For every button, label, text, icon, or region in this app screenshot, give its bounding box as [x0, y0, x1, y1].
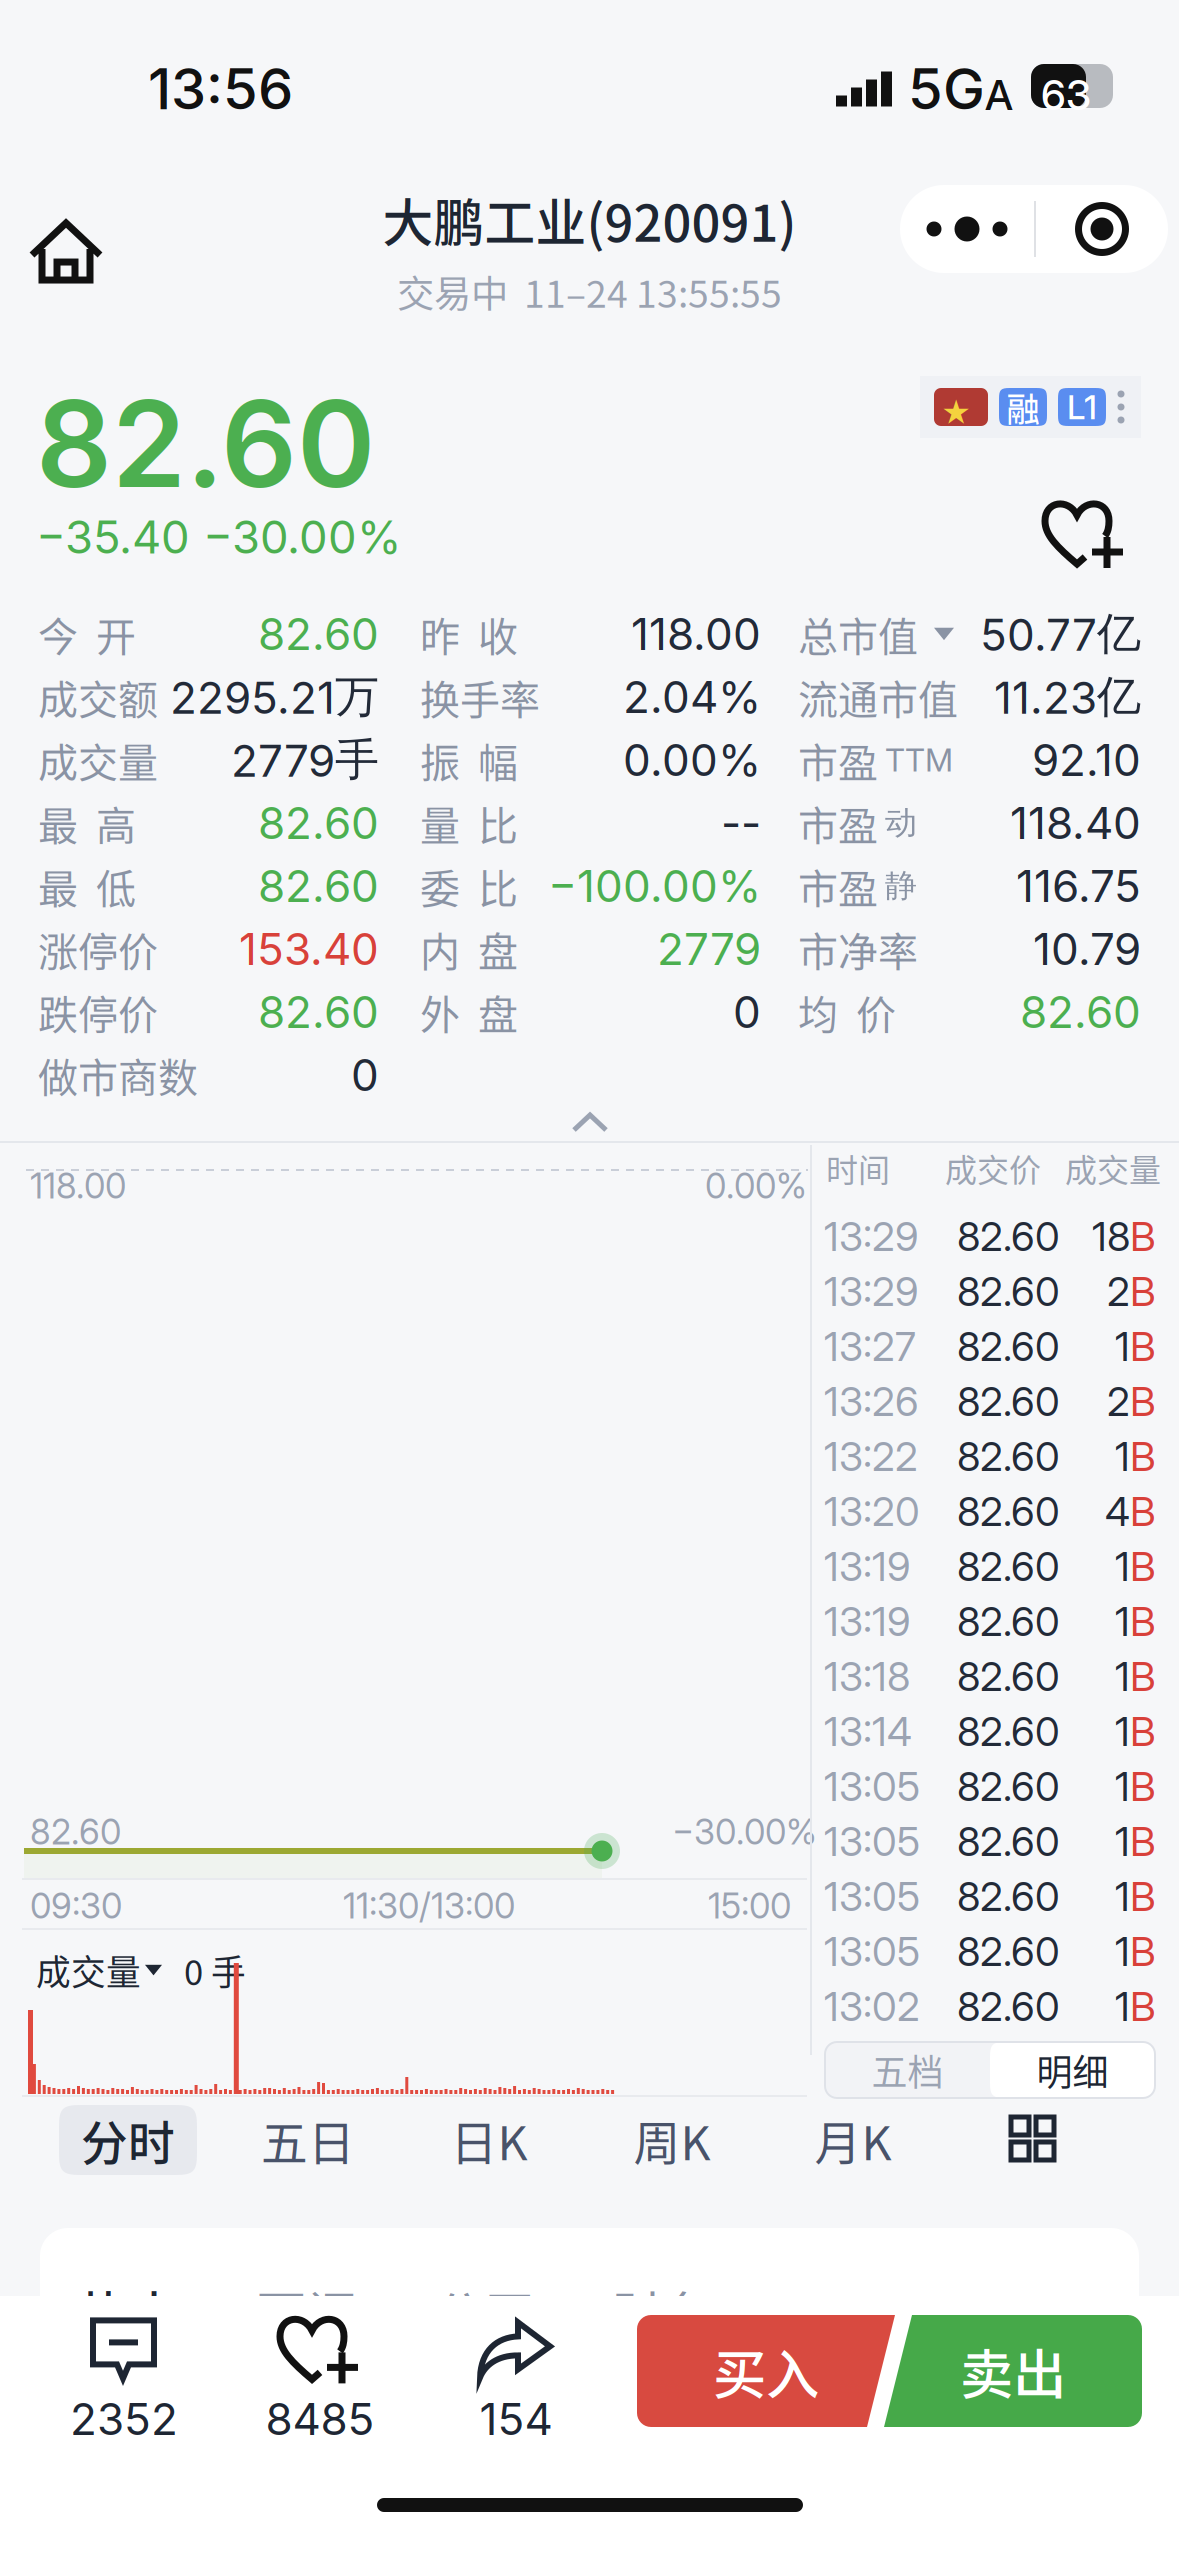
staticText: 0: [351, 1048, 379, 1101]
button[interactable]: 买入: [637, 2315, 895, 2427]
button[interactable]: 周K: [603, 2105, 741, 2175]
staticText: 82.60: [957, 1597, 1060, 1646]
staticText: 82.60: [1020, 985, 1141, 1038]
staticText: 13:29: [824, 1267, 919, 1316]
staticText: 153.40: [239, 922, 379, 975]
staticText: 118.00: [631, 607, 761, 660]
staticText: 82.60: [258, 985, 379, 1038]
staticText: 昨 收: [420, 605, 518, 663]
button[interactable]: 收起: [530, 1098, 650, 1148]
staticText: 1: [1115, 1927, 1130, 1976]
button[interactable]: 分时: [59, 2105, 197, 2175]
staticText: 成交量: [38, 731, 158, 789]
staticText: B: [1130, 1927, 1156, 1976]
staticText: 换手率: [420, 668, 540, 726]
staticText: 五档: [871, 2044, 943, 2096]
staticText: 82.60: [957, 1817, 1060, 1866]
button[interactable]: 月K: [784, 2105, 922, 2175]
staticText: 交易中 11–24 13:55:55: [397, 264, 782, 318]
staticText: B: [1130, 1212, 1156, 1261]
staticText: 82.60: [258, 796, 379, 849]
staticText: 成交量: [1065, 1145, 1161, 1191]
staticText: 82.60: [957, 1322, 1060, 1371]
staticText: A: [985, 70, 1013, 120]
staticText: 卖出: [960, 2332, 1066, 2410]
staticText: 2295.21万: [170, 669, 379, 725]
staticText: B: [1130, 1377, 1156, 1426]
staticText: 公司: [434, 2276, 536, 2349]
button[interactable]: 关闭: [1036, 185, 1168, 273]
staticText: 116.75: [1016, 859, 1141, 912]
button[interactable]: 明细: [990, 2042, 1155, 2098]
staticText: 4: [1105, 1487, 1130, 1536]
staticText: 分时: [81, 2106, 175, 2174]
staticText: 13:19: [824, 1597, 911, 1646]
staticText: B: [1130, 1487, 1156, 1536]
staticText: 2352: [70, 2392, 178, 2446]
staticText: L1: [1067, 387, 1097, 427]
staticText: 五日: [261, 2106, 355, 2174]
button[interactable]: 更多图表: [965, 2105, 1103, 2175]
staticText: 外 盘: [420, 983, 518, 1041]
staticText: B: [1130, 1597, 1156, 1646]
staticText: 市盈: [798, 857, 878, 915]
button[interactable]: 加自选: [1030, 480, 1140, 590]
staticText: 市盈: [798, 731, 878, 789]
staticText: 2779手: [231, 732, 379, 788]
staticText: 融: [1006, 383, 1039, 431]
staticText: B: [1130, 1267, 1156, 1316]
staticText: B: [1130, 1542, 1156, 1591]
button[interactable]: 首页: [12, 197, 122, 307]
staticText: 0: [733, 985, 761, 1038]
button[interactable]: 日K: [420, 2105, 558, 2175]
staticText: 要闻: [256, 2276, 358, 2349]
staticText: 静: [885, 866, 917, 906]
staticText: 5G: [908, 55, 985, 123]
staticText: −30.00%: [672, 1811, 817, 1853]
staticText: 11:30/13:00: [343, 1885, 515, 1927]
staticText: 13:19: [824, 1542, 911, 1591]
staticText: 15:00: [708, 1885, 791, 1927]
staticText: 买入: [713, 2332, 819, 2410]
staticText: 2779: [657, 922, 761, 975]
staticText: 量 比: [420, 794, 518, 852]
staticText: 82.60: [957, 1872, 1060, 1921]
staticText: 82.60: [957, 1377, 1060, 1426]
staticText: 82.60: [258, 859, 379, 912]
staticText: 82.60: [957, 1487, 1060, 1536]
staticText: 13:05: [824, 1817, 920, 1866]
staticText: 82.60: [957, 1707, 1060, 1756]
staticText: 振 幅: [420, 731, 518, 789]
staticText: 明细: [1036, 2044, 1108, 2096]
staticText: ★: [941, 395, 971, 430]
staticText: 82.60: [957, 1542, 1060, 1591]
button[interactable]: 五档: [825, 2042, 990, 2098]
staticText: 2.04%: [623, 670, 761, 723]
staticText: 1: [1115, 1542, 1130, 1591]
staticText: 市盈: [798, 794, 878, 852]
staticText: 1: [1115, 1762, 1130, 1811]
button[interactable]: 更多: [900, 185, 1034, 273]
staticText: 82.60: [957, 1267, 1060, 1316]
button[interactable]: 五日: [239, 2105, 377, 2175]
staticText: 热点: [78, 2276, 180, 2349]
staticText: 50.77亿: [980, 606, 1141, 662]
staticText: 18: [1092, 1212, 1130, 1261]
staticText: 13:05: [824, 1872, 920, 1921]
staticText: 82.60: [957, 1652, 1060, 1701]
staticText: 13:14: [824, 1707, 912, 1756]
staticText: 最 高: [38, 794, 136, 852]
staticText: −35.40 −30.00%: [36, 510, 402, 564]
button[interactable]: 评论: [26, 2308, 222, 2448]
staticText: 市净率: [798, 920, 918, 978]
staticText: 13:22: [824, 1432, 918, 1481]
staticText: 1: [1115, 1872, 1130, 1921]
staticText: 63: [1041, 70, 1091, 120]
staticText: 82.60: [957, 1432, 1060, 1481]
button[interactable]: 分享: [418, 2308, 614, 2448]
staticText: 13:05: [824, 1927, 920, 1976]
button[interactable]: 自选: [222, 2308, 418, 2448]
staticText: 13:05: [824, 1762, 920, 1811]
button[interactable]: 卖出: [884, 2315, 1142, 2427]
staticText: B: [1130, 1982, 1156, 2031]
